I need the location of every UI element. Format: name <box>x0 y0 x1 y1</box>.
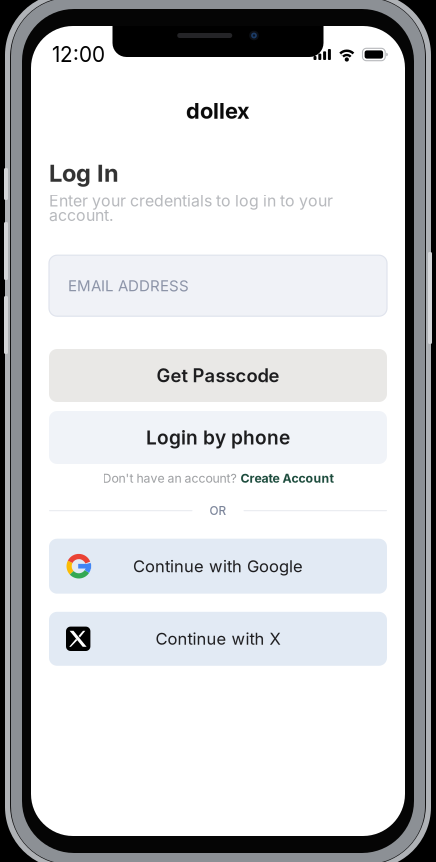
staticText: Login by phone <box>146 426 290 449</box>
button[interactable]: Create Account <box>240 471 333 486</box>
staticText: Enter your credentials to log in to your <box>49 191 333 210</box>
staticText: Continue with X <box>155 629 280 649</box>
staticText: Log In <box>49 159 119 187</box>
button[interactable]: Continue with X <box>49 612 387 666</box>
staticText: OR <box>209 504 226 518</box>
button[interactable]: Login by phone <box>49 411 387 464</box>
button[interactable]: Get Passcode <box>49 349 387 402</box>
staticText: account. <box>49 206 114 225</box>
staticText: Create Account <box>240 471 333 486</box>
button[interactable]: Continue with Google <box>49 539 387 594</box>
staticText: Continue with Google <box>133 556 303 576</box>
staticText: Get Passcode <box>156 364 279 387</box>
staticText: dollex <box>186 98 250 124</box>
staticText: EMAIL ADDRESS <box>68 277 189 295</box>
staticText: 12:00 <box>52 42 105 67</box>
staticText: Don't have an account? <box>102 471 236 486</box>
